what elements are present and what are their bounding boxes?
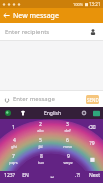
button[interactable]: Themes: [19, 109, 27, 117]
button[interactable]: ⌫: [81, 119, 103, 135]
button[interactable]: ?9: [81, 135, 103, 151]
button[interactable]: 1: [0, 119, 27, 135]
staticText: tuv: [38, 160, 44, 165]
button[interactable]: .?!: [70, 167, 85, 183]
button[interactable]: 7: [0, 151, 27, 167]
button[interactable]: ■: [81, 151, 103, 167]
staticText: pqrs: [9, 160, 18, 165]
staticText: ⌫: [88, 124, 96, 130]
staticText: ?9: [89, 140, 95, 147]
button[interactable]: 3: [54, 119, 81, 135]
button[interactable]: Attach: [0, 93, 13, 106]
button[interactable]: Add recipient: [85, 24, 100, 39]
button[interactable]: ␣: [33, 167, 70, 183]
staticText: mno: [63, 144, 72, 149]
staticText: wxyz: [63, 160, 73, 165]
staticText: 4: [13, 137, 16, 144]
staticText: 6: [66, 137, 69, 144]
button[interactable]: Next: [85, 167, 103, 183]
staticText: ␣: [50, 172, 54, 178]
staticText: Next: [89, 172, 100, 179]
staticText: 1: [12, 124, 15, 131]
button[interactable]: Back: [0, 9, 13, 22]
button[interactable]: EN: [18, 167, 33, 183]
staticText: 100%: [73, 2, 84, 7]
button[interactable]: 2: [27, 119, 54, 135]
staticText: 9: [67, 153, 70, 160]
staticText: 8: [40, 153, 43, 160]
staticText: ■: [90, 156, 95, 162]
staticText: jkl: [38, 144, 43, 149]
staticText: 7: [12, 153, 15, 160]
button[interactable]: 6: [54, 135, 81, 151]
staticText: SEND: [87, 97, 99, 103]
staticText: English: [44, 110, 62, 117]
staticText: def: [64, 128, 71, 133]
button[interactable]: Enter recipients: [0, 23, 103, 40]
button[interactable]: SEND: [86, 95, 99, 104]
staticText: 5: [39, 137, 42, 144]
staticText: 3: [66, 121, 69, 128]
button[interactable]: 5: [27, 135, 54, 151]
button[interactable]: 4: [0, 135, 27, 151]
staticText: Enter message: [13, 95, 55, 103]
button[interactable]: Emoji: [4, 109, 12, 117]
staticText: 2: [39, 121, 42, 128]
staticText: New message: [13, 11, 59, 21]
staticText: 123?: [4, 172, 15, 179]
staticText: ghi: [11, 144, 17, 149]
button[interactable]: Settings: [80, 109, 88, 117]
staticText: abc: [37, 128, 44, 133]
button[interactable]: 123?: [0, 167, 18, 183]
staticText: .?!: [75, 172, 80, 179]
staticText: EN: [22, 172, 29, 179]
staticText: Enter recipients: [5, 28, 50, 36]
button[interactable]: 9: [54, 151, 81, 167]
staticText: 13:21: [89, 1, 101, 7]
button[interactable]: Hide keyboard: [92, 109, 101, 118]
button[interactable]: 8: [27, 151, 54, 167]
